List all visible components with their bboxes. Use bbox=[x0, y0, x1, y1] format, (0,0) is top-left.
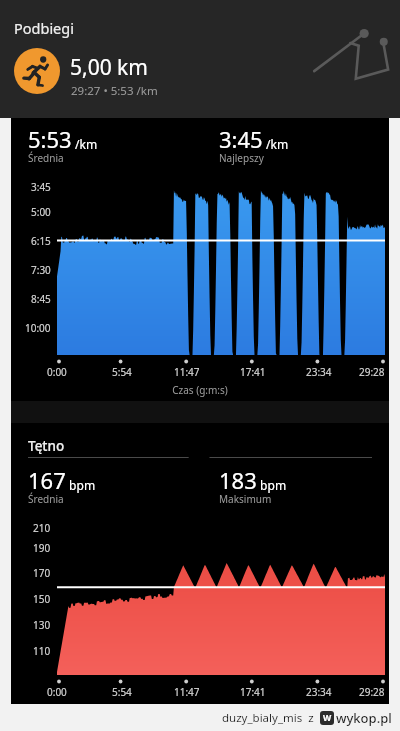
staticText: 3:45 bbox=[31, 180, 51, 194]
staticText: 110 bbox=[33, 644, 51, 658]
staticText: W bbox=[323, 712, 332, 724]
staticText: 29:28 bbox=[359, 365, 385, 379]
staticText: 210 bbox=[33, 521, 51, 535]
staticText: Podbiegi bbox=[14, 18, 74, 38]
staticText: 8:45 bbox=[31, 292, 51, 306]
staticText: 150 bbox=[33, 592, 51, 606]
staticText: 5:54 bbox=[112, 685, 132, 699]
staticText: 3:45 bbox=[219, 124, 263, 154]
staticText: /km bbox=[263, 136, 289, 152]
staticText: 130 bbox=[33, 618, 51, 632]
staticText: bpm bbox=[257, 477, 287, 493]
staticText: Najlepszy bbox=[219, 151, 264, 165]
staticText: 11:47 bbox=[174, 365, 200, 379]
staticText: 167 bbox=[28, 465, 66, 495]
staticText: 23:34 bbox=[306, 365, 332, 379]
staticText: Średnia bbox=[28, 151, 64, 165]
staticText: 5:54 bbox=[112, 365, 132, 379]
staticText: 29:28 bbox=[359, 685, 385, 699]
staticText: duzy_bialy_mis z bbox=[222, 710, 320, 726]
button[interactable]: Running activity bbox=[14, 48, 60, 94]
staticText: 5:53 bbox=[28, 124, 72, 154]
staticText: /km bbox=[72, 136, 98, 152]
staticText: 29:27 • 5:53 /km bbox=[71, 83, 158, 99]
staticText: 17:41 bbox=[240, 685, 266, 699]
staticText: 10:00 bbox=[25, 321, 51, 335]
staticText: Średnia bbox=[28, 492, 64, 506]
staticText: Maksimum bbox=[219, 492, 272, 506]
staticText: 170 bbox=[33, 566, 51, 580]
staticText: 5:00 bbox=[31, 205, 51, 219]
staticText: 183 bbox=[219, 465, 257, 495]
staticText: 0:00 bbox=[47, 685, 67, 699]
staticText: bpm bbox=[66, 477, 96, 493]
staticText: 5,00 km bbox=[70, 53, 148, 82]
staticText: 0:00 bbox=[47, 365, 67, 379]
staticText: Czas (g:m:s) bbox=[172, 383, 228, 397]
staticText: 11:47 bbox=[174, 685, 200, 699]
staticText: 23:34 bbox=[306, 685, 332, 699]
staticText: 190 bbox=[33, 541, 51, 555]
staticText: 17:41 bbox=[240, 365, 266, 379]
button[interactable]: Podbiegi bbox=[0, 0, 400, 118]
staticText: Tętno bbox=[28, 437, 65, 455]
staticText: 6:15 bbox=[31, 234, 51, 248]
staticText: 7:30 bbox=[31, 263, 51, 277]
staticText: wykop.pl bbox=[336, 709, 392, 727]
